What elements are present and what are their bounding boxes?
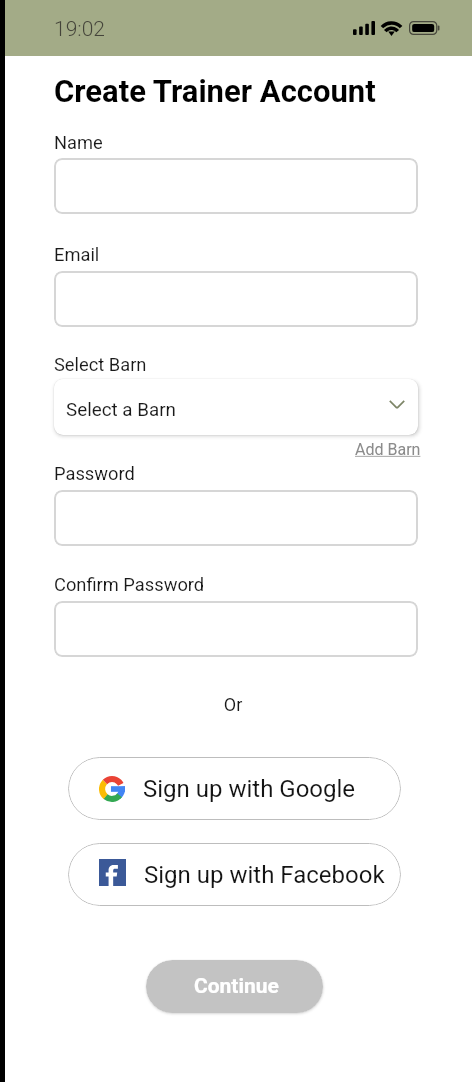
staticText: Create Trainer Account	[54, 73, 376, 109]
staticText: Or	[51, 694, 415, 715]
button[interactable]	[54, 158, 418, 214]
staticText: Name	[54, 132, 103, 153]
staticText: Select a Barn	[66, 399, 176, 421]
staticText: Password	[54, 463, 135, 484]
staticText: Confirm Password	[54, 574, 205, 595]
button[interactable]	[54, 490, 418, 546]
button[interactable]: Continue	[146, 960, 323, 1013]
button[interactable]: Add Barn	[355, 440, 421, 459]
button[interactable]: Select a Barn	[54, 379, 418, 435]
staticText: Sign up with Facebook	[144, 861, 385, 889]
staticText: Sign up with Google	[143, 775, 356, 803]
other: Expand barn list	[389, 400, 405, 409]
staticText: Select Barn	[54, 354, 147, 375]
button[interactable]: Sign up with Google	[68, 757, 401, 820]
button[interactable]	[54, 271, 418, 327]
button[interactable]	[54, 601, 418, 657]
staticText: Continue	[194, 974, 279, 999]
button[interactable]: Sign up with Facebook	[68, 843, 401, 906]
staticText: 19:02	[54, 17, 106, 42]
staticText: Email	[54, 244, 100, 265]
